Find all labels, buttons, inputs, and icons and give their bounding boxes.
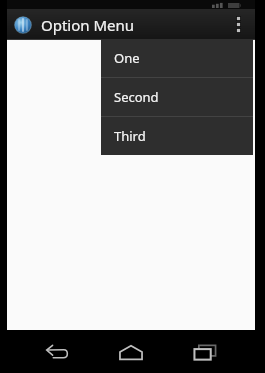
button[interactable]: Second: [101, 78, 253, 116]
button[interactable]: More options: [225, 9, 251, 40]
button[interactable]: Home: [107, 332, 155, 372]
staticText: Second: [114, 88, 159, 106]
button[interactable]: Third: [101, 117, 253, 155]
button[interactable]: One: [101, 39, 253, 77]
other: App icon: [13, 15, 33, 35]
staticText: Third: [114, 127, 146, 145]
button[interactable]: Back: [33, 332, 81, 372]
staticText: Option Menu: [41, 15, 135, 35]
button[interactable]: Recent apps: [181, 332, 229, 372]
staticText: One: [114, 49, 140, 67]
